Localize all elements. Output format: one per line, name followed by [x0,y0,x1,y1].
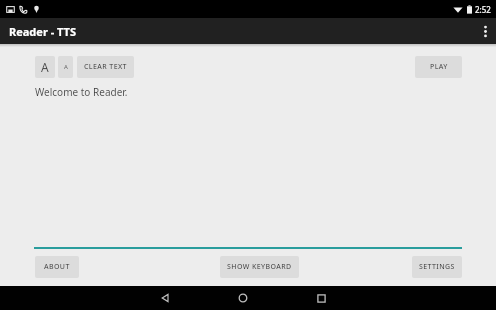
staticText: ABOUT [44,262,70,272]
staticText: 2:52 [475,4,491,15]
button[interactable]: Home [226,286,260,310]
staticText: A [41,59,49,75]
button[interactable]: PLAY [415,56,462,78]
staticText: PLAY [430,62,448,72]
button[interactable]: Recent apps [304,286,338,310]
staticText: SHOW KEYBOARD [227,262,292,272]
button[interactable]: CLEAR TEXT [77,56,134,78]
button[interactable]: More options [474,20,496,42]
button[interactable]: Increase text size [35,56,55,78]
staticText: A [64,63,68,71]
button[interactable]: Decrease text size [58,56,73,78]
button[interactable]: Back [148,286,182,310]
staticText: CLEAR TEXT [84,62,127,72]
staticText: Welcome to Reader. [35,85,128,99]
staticText: Reader - TTS [9,24,77,39]
button[interactable]: SETTINGS [412,256,462,278]
button[interactable]: SHOW KEYBOARD [220,256,299,278]
staticText: SETTINGS [419,262,455,272]
button[interactable]: ABOUT [35,256,79,278]
